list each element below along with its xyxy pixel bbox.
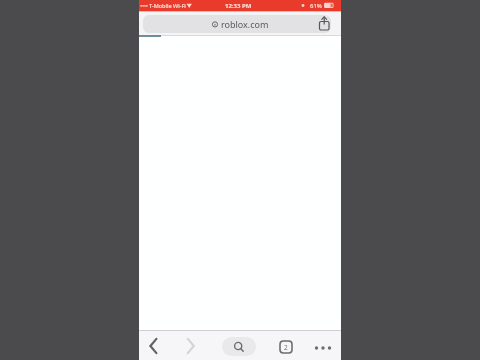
staticText: 12:33 PM <box>225 2 252 10</box>
staticText: 2 <box>284 343 288 352</box>
button[interactable] <box>149 338 159 355</box>
button[interactable]: 2 <box>279 340 293 354</box>
staticText: T-Mobile Wi-Fi <box>149 2 186 9</box>
staticText: roblox.com <box>221 18 269 30</box>
button[interactable] <box>318 16 331 32</box>
staticText: 61% <box>310 2 322 10</box>
button[interactable] <box>186 338 196 355</box>
button[interactable] <box>222 337 256 356</box>
button[interactable] <box>311 341 335 353</box>
button[interactable]: roblox.com <box>143 15 331 33</box>
